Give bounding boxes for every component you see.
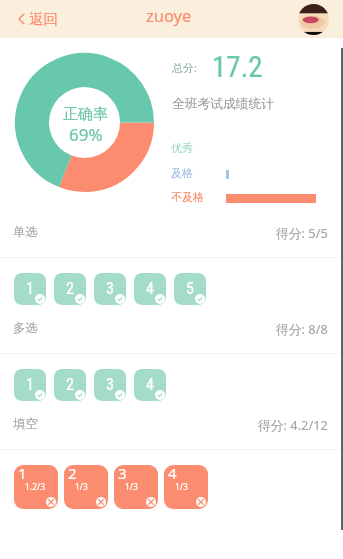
staticText: 全班考试成绩统计 xyxy=(172,96,274,112)
staticText: 返回 xyxy=(29,10,58,28)
button[interactable]: 4 xyxy=(134,273,166,305)
staticText: 得分: 4.2/12 xyxy=(258,416,328,433)
button[interactable]: 2 xyxy=(54,369,86,401)
button[interactable]: 1 xyxy=(14,273,46,305)
staticText: 5 xyxy=(186,279,194,298)
button[interactable]: 3 xyxy=(114,465,158,509)
staticText: 69% xyxy=(69,123,103,146)
staticText: 2 xyxy=(66,279,74,298)
button[interactable]: 4 xyxy=(134,369,166,401)
button[interactable]: Profile xyxy=(298,4,329,35)
button[interactable]: 返回 xyxy=(14,5,62,33)
staticText: 2 xyxy=(68,465,77,483)
staticText: 3 xyxy=(106,375,114,394)
staticText: 得分: 8/8 xyxy=(276,320,328,337)
staticText: 填空 xyxy=(13,416,38,432)
staticText: 4 xyxy=(146,375,154,394)
button[interactable]: 3 xyxy=(94,369,126,401)
button[interactable]: 填空 xyxy=(0,410,343,438)
button[interactable]: 1 xyxy=(14,465,58,509)
staticText: 多选 xyxy=(13,320,38,336)
staticText: 3 xyxy=(106,279,114,298)
staticText: 1 xyxy=(18,465,27,483)
staticText: 正确率 xyxy=(63,105,108,124)
staticText: 1/3 xyxy=(175,481,188,493)
button[interactable]: 2 xyxy=(64,465,108,509)
staticText: 1.2/3 xyxy=(25,481,46,493)
button[interactable]: 5 xyxy=(174,273,206,305)
staticText: 优秀 xyxy=(171,141,193,155)
button[interactable]: 1 xyxy=(14,369,46,401)
staticText: 得分: 5/5 xyxy=(276,224,328,241)
staticText: 1/3 xyxy=(125,481,138,493)
staticText: zuoye xyxy=(146,4,192,26)
staticText: 及格 xyxy=(171,166,193,180)
staticText: 4 xyxy=(168,465,177,483)
button[interactable]: 2 xyxy=(54,273,86,305)
button[interactable]: 4 xyxy=(164,465,208,509)
button[interactable]: 3 xyxy=(94,273,126,305)
staticText: 1 xyxy=(26,375,34,394)
staticText: 17.2 xyxy=(212,50,263,84)
staticText: 不及格 xyxy=(171,190,204,204)
staticText: 总分: xyxy=(172,60,197,75)
staticText: 1 xyxy=(26,279,34,298)
button[interactable]: 单选 xyxy=(0,218,343,246)
staticText: 1/3 xyxy=(75,481,88,493)
button[interactable]: 多选 xyxy=(0,314,343,342)
staticText: 3 xyxy=(118,465,127,483)
staticText: 单选 xyxy=(13,224,38,240)
staticText: 2 xyxy=(66,375,74,394)
staticText: 4 xyxy=(146,279,154,298)
